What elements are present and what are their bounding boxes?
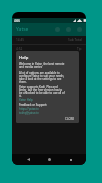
staticText: Welcome in Yatse, the best remote and me… xyxy=(19,62,66,69)
button[interactable]: Action xyxy=(74,23,85,36)
button[interactable]: CLOSE xyxy=(64,116,76,122)
staticText: Yatse xyxy=(16,26,29,33)
button[interactable]: Home xyxy=(43,154,55,165)
staticText: Help xyxy=(19,55,29,61)
staticText: CLOSE xyxy=(65,117,75,121)
staticText: Sub Total xyxy=(68,38,82,42)
button[interactable]: Action xyxy=(52,23,63,36)
button[interactable]: Recents xyxy=(65,154,77,165)
staticText: Tip xyxy=(77,47,82,51)
staticText: https://yatse.tv xyxy=(19,107,39,111)
staticText: tolriq@yatse.tv xyxy=(19,111,39,115)
staticText: Feedback or Support: xyxy=(19,103,48,107)
staticText: Yatse Help xyxy=(19,98,33,102)
button[interactable]: Action xyxy=(63,23,74,36)
staticText: 14:45 xyxy=(16,38,25,42)
staticText: 4:56 xyxy=(14,19,20,23)
staticText: Yatse supports Kodi, Plex and Emby, but … xyxy=(19,85,66,98)
button[interactable]: Back xyxy=(22,154,34,165)
staticText: A lot of options are available to config… xyxy=(19,71,66,84)
staticText: 4:52 xyxy=(16,47,23,51)
